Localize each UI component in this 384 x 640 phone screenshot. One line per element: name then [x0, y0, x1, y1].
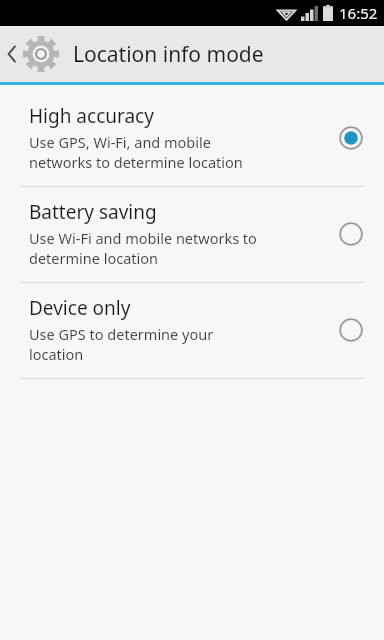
button[interactable]: Device only	[0, 283, 384, 378]
staticText: Location info mode	[73, 40, 264, 69]
other: Not selected	[338, 221, 364, 247]
other: Not selected	[338, 317, 364, 343]
staticText: Use GPS, Wi-Fi, and mobile networks to d…	[29, 132, 243, 173]
staticText: High accuracy	[29, 103, 154, 129]
staticText: Battery saving	[29, 199, 157, 225]
staticText: Use Wi-Fi and mobile networks to determi…	[29, 228, 257, 269]
staticText: 16:52	[339, 3, 378, 23]
staticText: Use GPS to determine your location	[29, 324, 214, 365]
other: Selected	[338, 125, 364, 151]
button[interactable]: Battery saving	[0, 187, 384, 282]
staticText: Device only	[29, 295, 131, 321]
button[interactable]: High accuracy	[0, 91, 384, 186]
button[interactable]: Back to Location settings	[0, 26, 384, 82]
